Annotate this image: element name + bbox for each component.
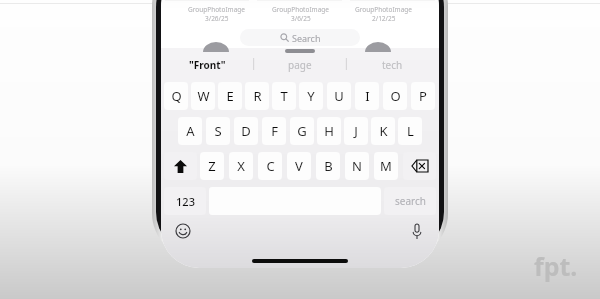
button[interactable]: H <box>317 117 341 145</box>
staticText: 2/12/25 <box>372 14 396 23</box>
button[interactable]: J <box>344 117 368 145</box>
staticText: F <box>271 122 278 140</box>
staticText: W <box>197 87 210 105</box>
button[interactable]: tech <box>346 56 439 74</box>
button[interactable]: E <box>218 82 242 110</box>
staticText: Z <box>208 157 216 175</box>
staticText: N <box>352 157 362 175</box>
button[interactable]: search <box>384 187 436 215</box>
button[interactable]: T <box>272 82 296 110</box>
button[interactable]: M <box>374 152 398 180</box>
staticText: M <box>380 157 392 175</box>
button[interactable]: "Front" <box>161 56 253 74</box>
button[interactable]: V <box>287 152 311 180</box>
staticText: C <box>266 157 275 175</box>
staticText: fpt. <box>534 249 578 283</box>
staticText: 3/26/25 <box>205 14 229 23</box>
staticText: 3/6/25 <box>291 14 311 23</box>
staticText: K <box>379 122 388 140</box>
button[interactable]: Z <box>200 152 224 180</box>
button[interactable]: F <box>262 117 286 145</box>
button[interactable]: R <box>245 82 269 110</box>
staticText: GroupPhotoImage <box>188 5 245 14</box>
staticText: G <box>297 122 307 140</box>
staticText: J <box>354 122 358 140</box>
staticText: page <box>288 58 312 72</box>
staticText: H <box>324 122 334 140</box>
button[interactable]: D <box>234 117 258 145</box>
button[interactable]: Shift <box>164 152 197 180</box>
button[interactable]: Y <box>299 82 323 110</box>
staticText: GroupPhotoImage <box>272 5 329 14</box>
staticText: S <box>214 122 222 140</box>
staticText: V <box>295 157 303 175</box>
staticText: X <box>237 157 245 175</box>
button[interactable]: B <box>316 152 340 180</box>
staticText: tech <box>382 58 403 72</box>
button[interactable]: C <box>258 152 282 180</box>
button[interactable]: A <box>178 117 202 145</box>
staticText: Q <box>171 87 182 105</box>
staticText: P <box>419 87 427 105</box>
staticText: I <box>365 87 370 105</box>
button[interactable]: W <box>191 82 215 110</box>
button[interactable]: G <box>290 117 314 145</box>
staticText: B <box>324 157 333 175</box>
button[interactable]: K <box>371 117 395 145</box>
button[interactable]: S <box>206 117 230 145</box>
button[interactable]: L <box>398 117 422 145</box>
button[interactable]: O <box>383 82 407 110</box>
button[interactable]: Backspace <box>403 152 436 180</box>
staticText: GroupPhotoImage <box>355 5 412 14</box>
staticText: search <box>395 194 426 208</box>
button[interactable]: X <box>229 152 253 180</box>
staticText: O <box>390 87 401 105</box>
staticText: 123 <box>176 194 195 209</box>
button[interactable]: U <box>327 82 351 110</box>
staticText: D <box>241 122 251 140</box>
button[interactable]: P <box>411 82 435 110</box>
button[interactable]: Q <box>164 82 188 110</box>
button[interactable]: page <box>253 56 346 74</box>
button[interactable]: Emoji <box>173 221 193 241</box>
button[interactable]: N <box>345 152 369 180</box>
staticText: A <box>186 122 195 140</box>
staticText: Y <box>307 87 315 105</box>
staticText: E <box>226 87 234 105</box>
staticText: Search <box>292 32 321 44</box>
staticText: U <box>334 87 344 105</box>
button[interactable]: I <box>355 82 379 110</box>
button[interactable]: Dictate <box>407 221 427 241</box>
button[interactable]: 123 <box>164 187 206 215</box>
button[interactable]: Search <box>240 29 360 46</box>
staticText: "Front" <box>189 58 226 72</box>
staticText: R <box>253 87 262 105</box>
staticText: L <box>407 122 414 140</box>
staticText: T <box>280 87 288 105</box>
